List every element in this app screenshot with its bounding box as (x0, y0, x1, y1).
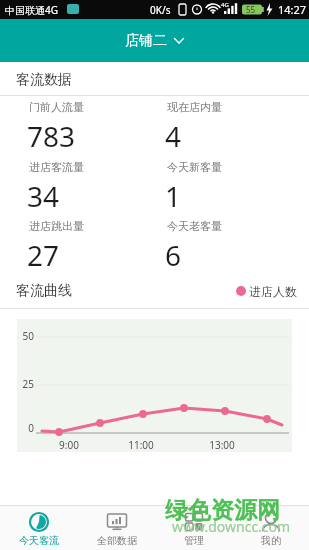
button[interactable]: 今天客流 (0, 505, 78, 550)
staticText: 783 (27, 117, 76, 155)
staticText: 4 (165, 117, 182, 155)
staticText: 今天新客量 (167, 160, 222, 174)
staticText: www.downcc.com (172, 517, 291, 536)
staticText: 今天客流 (19, 534, 59, 547)
staticText: 0 (18, 421, 34, 435)
staticText: 4G (221, 1, 229, 9)
staticText: 25 (18, 377, 34, 391)
staticText: 55 (246, 4, 256, 15)
button[interactable]: 我的 (232, 505, 309, 550)
staticText: 全部数据 (97, 534, 137, 547)
staticText: 0K/s (150, 3, 171, 17)
staticText: 13:00 (202, 438, 242, 452)
button[interactable]: 全部数据 (78, 505, 155, 550)
staticText: 进店人数 (249, 284, 297, 299)
staticText: 1 (165, 177, 182, 215)
button[interactable]: 店铺二 (0, 19, 309, 62)
staticText: 现在店内量 (167, 100, 222, 114)
staticText: 6 (165, 236, 182, 274)
staticText: 11:00 (121, 438, 161, 452)
staticText: 今天老客量 (167, 219, 222, 233)
staticText: 9:00 (49, 438, 89, 452)
staticText: 进店跳出量 (29, 219, 84, 233)
staticText: 34 (27, 177, 60, 215)
staticText: 进店客流量 (29, 160, 84, 174)
staticText: 27 (27, 236, 60, 274)
staticText: 50 (18, 329, 34, 343)
staticText: 门前人流量 (29, 100, 84, 114)
staticText: 我的 (261, 534, 281, 547)
staticText: 中国联通4G (5, 3, 58, 17)
staticText: 客流曲线 (16, 282, 72, 300)
staticText: 管理 (184, 534, 204, 547)
staticText: 绿色资源网 (165, 496, 280, 525)
staticText: 14:27 (278, 2, 307, 17)
button[interactable]: 管理 (155, 505, 232, 550)
staticText: 店铺二 (125, 32, 167, 50)
staticText: 客流数据 (16, 71, 72, 89)
